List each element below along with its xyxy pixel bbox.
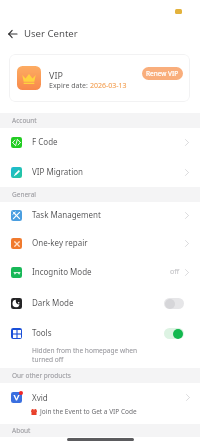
- staticText: F Code: [32, 136, 58, 147]
- button[interactable]: Back: [3, 18, 22, 48]
- button[interactable]: F Code: [0, 128, 200, 157]
- button[interactable]: VIP: [9, 54, 190, 102]
- staticText: Renew VIP: [146, 69, 179, 78]
- button[interactable]: One-key repair: [0, 228, 200, 259]
- button[interactable]: Tools: [0, 321, 200, 368]
- staticText: Hidden from the homepage when turned off: [32, 346, 144, 364]
- staticText: General: [12, 190, 36, 199]
- staticText: User Center: [24, 27, 78, 40]
- button[interactable]: Dark Mode: [0, 286, 200, 321]
- staticText: About: [12, 426, 31, 435]
- button[interactable]: Incognito Mode: [0, 259, 200, 286]
- button[interactable]: Task Management: [0, 202, 200, 228]
- staticText: Join the Event to Get a VIP Code: [40, 407, 137, 416]
- button[interactable]: VIP Migration: [0, 157, 200, 187]
- staticText: VIP: [49, 69, 63, 81]
- staticText: VIP Migration: [32, 166, 84, 177]
- staticText: Task Management: [32, 209, 101, 220]
- button[interactable]: Toggle on: [164, 328, 184, 339]
- button[interactable]: Toggle off: [164, 298, 184, 309]
- staticText: Account: [12, 116, 37, 125]
- button[interactable]: Xvid: [0, 383, 200, 424]
- staticText: Xvid: [32, 392, 48, 403]
- staticText: Dark Mode: [32, 297, 74, 308]
- staticText: Incognito Mode: [32, 266, 92, 277]
- staticText: Tools: [32, 327, 52, 338]
- staticText: off: [170, 267, 180, 277]
- button[interactable]: Renew VIP: [142, 67, 183, 80]
- staticText: One-key repair: [32, 237, 88, 248]
- staticText: Our other products: [12, 371, 71, 380]
- staticText: 2026-03-13: [90, 81, 127, 91]
- staticText: Expire date:: [49, 81, 90, 91]
